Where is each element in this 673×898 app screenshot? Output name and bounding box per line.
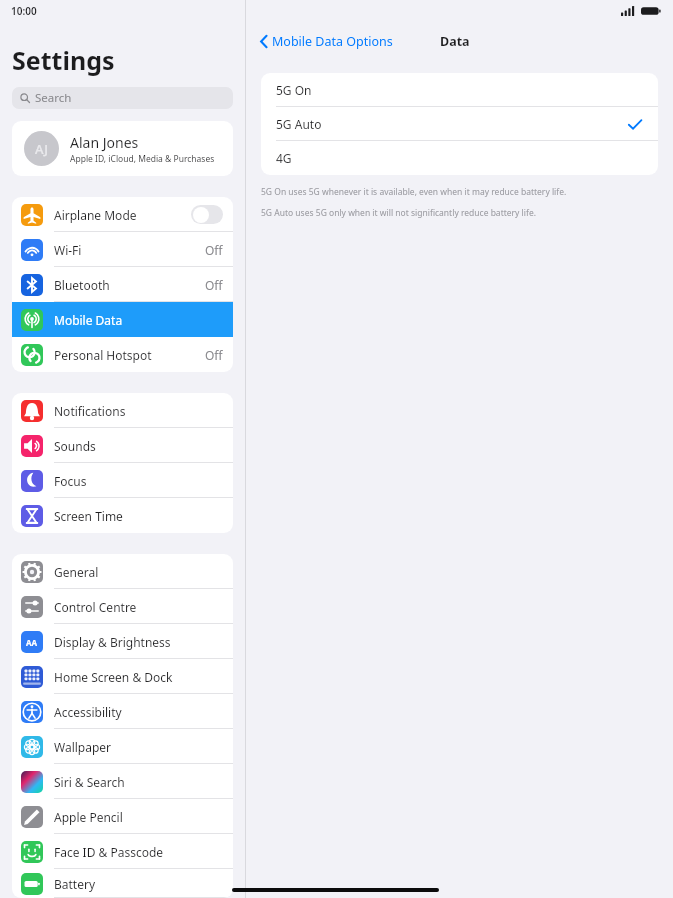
button[interactable]: Wallpaper [12, 729, 233, 764]
staticText: Wi-Fi [54, 242, 82, 258]
button[interactable]: Mobile Data [12, 302, 233, 337]
button[interactable]: AJ [12, 121, 233, 176]
staticText: Data [440, 33, 470, 50]
staticText: Mobile Data [54, 312, 123, 328]
staticText: Mobile Data Options [272, 33, 393, 50]
staticText: Screen Time [54, 508, 123, 524]
staticText: Apple ID, iCloud, Media & Purchases [70, 153, 215, 165]
staticText: Off [205, 347, 223, 363]
button[interactable]: Focus [12, 463, 233, 498]
button[interactable]: Wi-Fi [12, 232, 233, 267]
button[interactable]: Search [12, 87, 233, 109]
button[interactable]: General [12, 554, 233, 589]
staticText: Bluetooth [54, 277, 110, 293]
staticText: Face ID & Passcode [54, 844, 164, 860]
button[interactable]: 4G [261, 141, 658, 175]
button[interactable]: Control Centre [12, 589, 233, 624]
staticText: 4G [276, 150, 292, 166]
staticText: Accessibility [54, 704, 122, 720]
button[interactable]: Mobile Data Options [258, 30, 395, 53]
button[interactable]: AA [12, 624, 233, 659]
button[interactable]: Bluetooth [12, 267, 233, 302]
staticText: Control Centre [54, 599, 137, 615]
button[interactable]: 5G On [261, 73, 658, 107]
staticText: Wallpaper [54, 739, 112, 755]
staticText: Focus [54, 473, 87, 489]
button[interactable]: Sounds [12, 428, 233, 463]
button[interactable]: Airplane Mode [12, 197, 233, 232]
button[interactable]: Battery [12, 869, 233, 898]
staticText: 5G Auto uses 5G only when it will not si… [261, 207, 536, 219]
staticText: Settings [12, 43, 115, 77]
staticText: AJ [35, 140, 48, 158]
staticText: Apple Pencil [54, 809, 123, 825]
staticText: Off [205, 277, 223, 293]
staticText: General [54, 564, 99, 580]
button[interactable]: Siri & Search [12, 764, 233, 799]
button[interactable]: Apple Pencil [12, 799, 233, 834]
button[interactable]: Personal Hotspot [12, 337, 233, 372]
staticText: AA [26, 637, 38, 648]
button[interactable]: 5G Auto [261, 107, 658, 141]
button[interactable] [191, 205, 223, 224]
staticText: Battery [54, 876, 96, 892]
staticText: Search [35, 90, 72, 106]
staticText: Home Screen & Dock [54, 669, 173, 685]
staticText: Sounds [54, 438, 96, 454]
button[interactable]: Notifications [12, 393, 233, 428]
staticText: Airplane Mode [54, 207, 137, 223]
button[interactable]: Home Screen & Dock [12, 659, 233, 694]
staticText: 5G Auto [276, 116, 322, 132]
staticText: 10:00 [11, 4, 37, 18]
button[interactable]: Accessibility [12, 694, 233, 729]
staticText: Alan Jones [70, 133, 139, 152]
staticText: Personal Hotspot [54, 347, 152, 363]
staticText: Off [205, 242, 223, 258]
staticText: 5G On uses 5G whenever it is available, … [261, 186, 567, 198]
staticText: 5G On [276, 82, 312, 98]
button[interactable]: Face ID & Passcode [12, 834, 233, 869]
button[interactable]: Screen Time [12, 498, 233, 533]
other: Selected [628, 119, 642, 130]
staticText: Siri & Search [54, 774, 125, 790]
staticText: Display & Brightness [54, 634, 171, 650]
staticText: Notifications [54, 403, 126, 419]
